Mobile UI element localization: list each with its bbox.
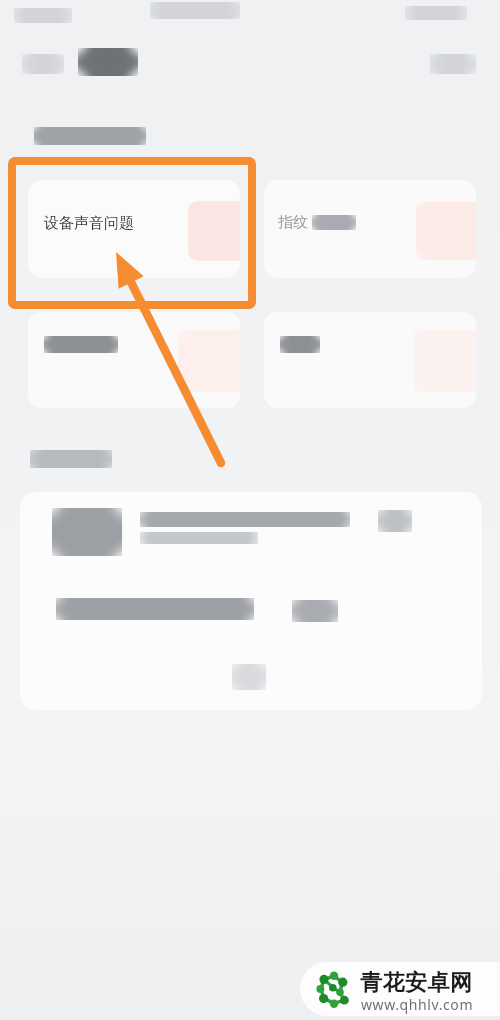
- staticText: 设备声音问题: [44, 214, 134, 233]
- button[interactable]: 指纹: [264, 180, 476, 278]
- button[interactable]: [52, 508, 122, 556]
- button[interactable]: [28, 312, 240, 408]
- staticText: 指纹: [278, 213, 308, 232]
- button[interactable]: [264, 312, 476, 408]
- button[interactable]: [232, 664, 266, 690]
- staticText: www.qhhlv.com: [361, 995, 500, 1014]
- button[interactable]: 设备声音问题: [28, 180, 240, 278]
- staticText: 青花安卓网: [360, 969, 473, 997]
